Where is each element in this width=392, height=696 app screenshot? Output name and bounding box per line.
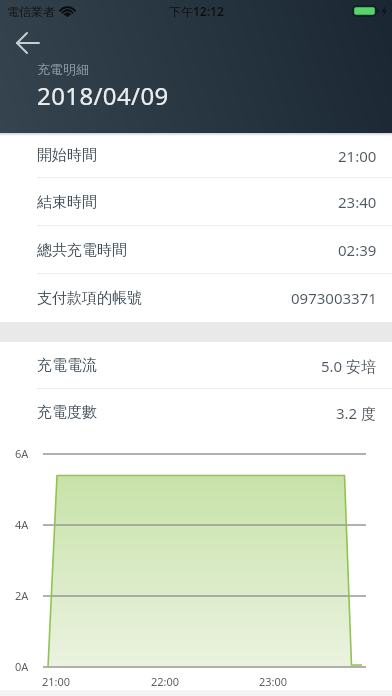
staticText: 結束時間: [37, 193, 97, 212]
staticText: 支付款項的帳號: [37, 289, 142, 308]
staticText: 電信業者: [7, 4, 55, 19]
button[interactable]: [8, 26, 48, 60]
button[interactable]: 充電電流: [0, 342, 392, 389]
staticText: 5.0 安培: [321, 356, 377, 376]
button[interactable]: 結束時間: [0, 178, 392, 226]
button[interactable]: 充電度數: [0, 389, 392, 436]
staticText: 23:00: [259, 674, 288, 689]
staticText: 0973003371: [291, 288, 377, 308]
staticText: 22:00: [151, 674, 180, 689]
staticText: 開始時間: [37, 146, 97, 165]
button[interactable]: 開始時間: [0, 133, 392, 178]
staticText: 下午12:12: [169, 3, 224, 19]
button[interactable]: 總共充電時間: [0, 226, 392, 274]
staticText: 02:39: [338, 240, 377, 260]
staticText: 6A: [15, 446, 29, 461]
staticText: 23:40: [338, 192, 377, 212]
staticText: 充電電流: [37, 356, 97, 375]
staticText: 4A: [15, 517, 29, 532]
staticText: 3.2 度: [336, 403, 377, 423]
staticText: 2018/04/09: [37, 79, 169, 112]
staticText: 總共充電時間: [37, 241, 127, 260]
staticText: 2A: [15, 588, 29, 603]
staticText: 充電度數: [37, 403, 97, 422]
staticText: 21:00: [42, 674, 71, 689]
staticText: 充電明細: [37, 61, 89, 77]
button[interactable]: 支付款項的帳號: [0, 274, 392, 322]
staticText: 0A: [15, 659, 29, 674]
staticText: 21:00: [338, 146, 377, 166]
